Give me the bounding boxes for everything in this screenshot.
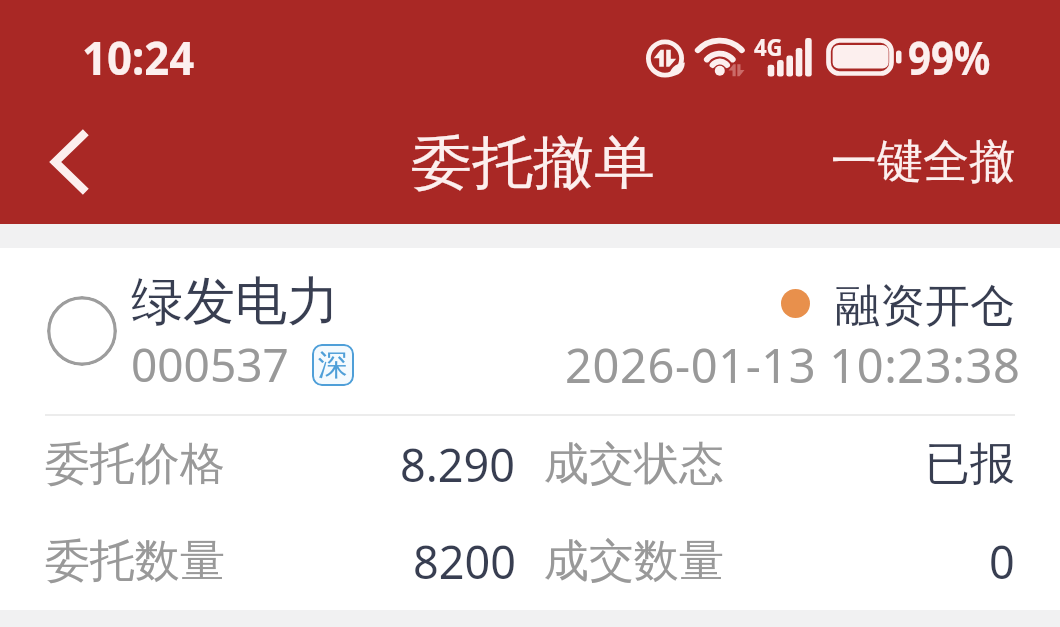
staticText: 2026-01-13 10:23:38 [565,333,1021,397]
staticText: 一键全撤 [831,133,1015,191]
staticText: 99% [908,26,991,89]
button[interactable]: Select order [47,296,117,366]
button[interactable]: Select order [0,248,1060,610]
staticText: 成交状态 [544,436,724,493]
staticText: 8200 [413,531,516,592]
staticText: 委托价格 [45,436,225,493]
button[interactable]: Back [0,100,125,224]
staticText: 融资开仓 [835,278,1015,335]
staticText: 000537 [131,333,289,396]
staticText: 委托数量 [45,533,225,590]
staticText: 10:24 [82,26,195,89]
staticText: 已报 [925,436,1015,493]
staticText: 0 [989,531,1015,592]
staticText: 8.290 [400,434,516,495]
staticText: 绿发电力 [131,269,339,335]
staticText: 4G [754,30,783,62]
button[interactable]: 一键全撤 [831,100,1015,224]
staticText: 成交数量 [544,533,724,590]
staticText: 深 [318,346,348,384]
staticText: 委托撤单 [411,127,655,198]
